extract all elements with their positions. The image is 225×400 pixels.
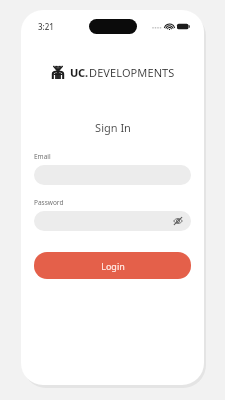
- staticText: Login: [101, 260, 125, 272]
- staticText: DEVELOPMENTS: [89, 65, 175, 80]
- staticText: UC.: [70, 65, 88, 80]
- button[interactable]: Show password: [172, 215, 184, 227]
- staticText: Password: [34, 198, 64, 207]
- button[interactable]: [34, 165, 191, 185]
- staticText: Sign In: [95, 120, 131, 135]
- staticText: 3:21: [38, 21, 54, 32]
- staticText: Email: [34, 152, 51, 161]
- button[interactable]: Show password: [34, 211, 191, 231]
- button[interactable]: Login: [34, 252, 191, 279]
